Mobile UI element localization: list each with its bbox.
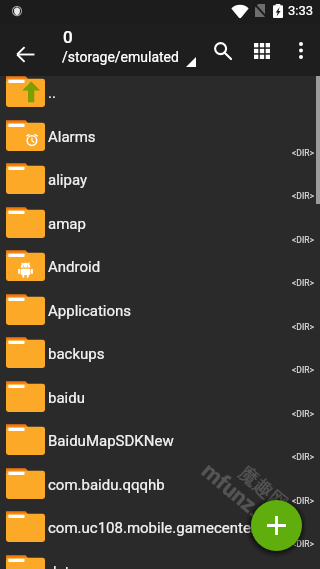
button[interactable]: alipay [0,163,320,206]
button[interactable]: Add [251,500,302,551]
staticText: com.uc108.mobile.gamecenter [48,519,256,537]
staticText: alipay [48,171,88,189]
button[interactable]: View options [242,31,281,70]
staticText: baidu [48,389,85,407]
button[interactable]: com.baidu.qqqhb [0,468,320,511]
staticText: <DIR> [292,191,314,201]
staticText: <DIR> [292,322,314,332]
button[interactable]: com.uc108.mobile.gamecenter [0,511,320,554]
staticText: <DIR> [292,235,314,245]
staticText: backups [48,345,105,363]
staticText: mfunz.com [196,458,300,551]
staticText: com.baidu.qqqhb [48,476,165,494]
button[interactable]: data [0,555,320,569]
staticText: <DIR> [292,148,314,158]
staticText: .. [48,84,56,102]
button[interactable]: Search [203,31,242,70]
button[interactable]: amap [0,207,320,250]
staticText: 3:33 [288,3,314,18]
button[interactable]: Applications [0,294,320,337]
staticText: <DIR> [292,496,314,506]
button[interactable]: baidu [0,381,320,424]
staticText: BaiduMapSDKNew [48,432,174,450]
staticText: <DIR> [292,278,314,288]
staticText: Alarms [48,128,96,146]
staticText: <DIR> [292,409,314,419]
button[interactable]: .. [0,76,320,119]
button[interactable]: backups [0,337,320,380]
staticText: 魔趣网 [234,461,293,516]
button[interactable]: Back [9,38,41,70]
button[interactable]: More options [281,31,320,70]
staticText: Android [48,258,101,276]
staticText: /storage/emulated [62,49,179,65]
staticText: <DIR> [292,452,314,462]
button[interactable]: Android [0,250,320,293]
button[interactable]: Alarms [0,120,320,163]
staticText: Applications [48,302,132,320]
staticText: 0 [63,27,73,47]
button[interactable]: BaiduMapSDKNew [0,424,320,467]
staticText: <DIR> [292,539,314,549]
staticText: <DIR> [292,365,314,375]
staticText: data [48,563,78,569]
staticText: amap [48,215,86,233]
